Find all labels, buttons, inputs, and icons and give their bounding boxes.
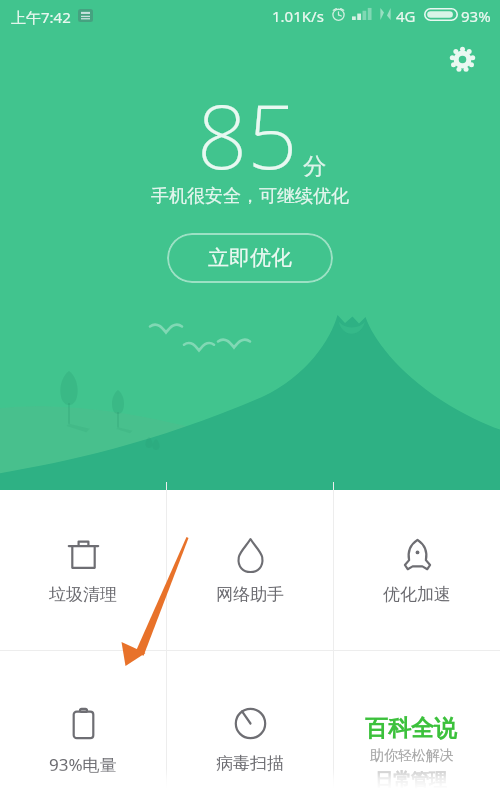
staticText: 上午7:42 (11, 7, 71, 27)
staticText: 网络助手 (216, 584, 284, 605)
staticText: 立即优化 (208, 245, 292, 271)
staticText: 日常管理 (375, 769, 447, 790)
staticText: 优化加速 (383, 584, 451, 605)
button[interactable]: 优化加速 (334, 482, 500, 650)
button[interactable]: 93%电量 (0, 651, 166, 790)
staticText: 85 (197, 75, 298, 195)
staticText: 垃圾清理 (49, 584, 117, 605)
button[interactable]: 垃圾清理 (0, 482, 166, 650)
staticText: 助你轻松解决 (370, 747, 454, 765)
staticText: 手机很安全，可继续优化 (151, 185, 349, 208)
button[interactable]: Settings (442, 39, 482, 79)
button[interactable]: 网络助手 (167, 482, 333, 650)
button[interactable]: 立即优化 (167, 233, 333, 283)
staticText: 93%电量 (49, 753, 117, 776)
staticText: 百科全说 (365, 714, 457, 743)
button[interactable]: 病毒扫描 (167, 651, 333, 790)
staticText: 93% (461, 6, 491, 26)
staticText: 病毒扫描 (216, 753, 284, 774)
staticText: 分 (303, 152, 326, 181)
staticText: 4G (396, 6, 416, 26)
staticText: 1.01K/s (272, 6, 324, 26)
